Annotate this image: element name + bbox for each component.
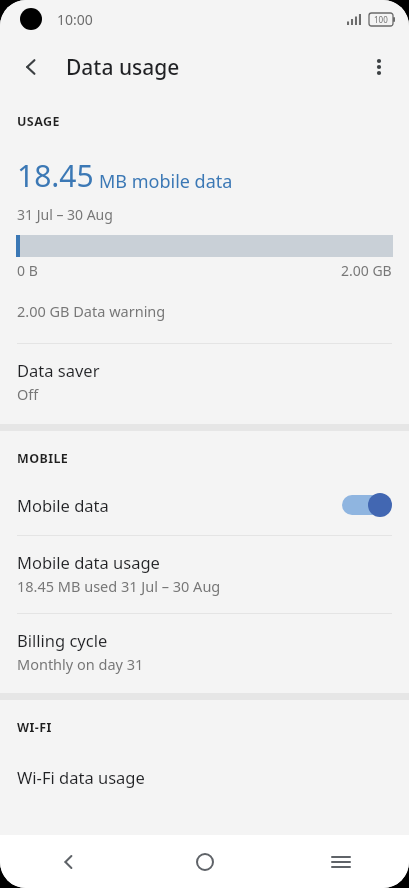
button[interactable]: Back [0,835,137,888]
staticText: MB mobile data [99,169,233,194]
staticText: 18.45 MB used 31 Jul – 30 Aug [17,576,221,596]
staticText: Mobile data [17,494,342,516]
staticText: Data usage [66,53,180,82]
button[interactable]: Recent apps [273,835,409,888]
button[interactable]: Mobile data usage [0,536,409,613]
staticText: 100 [374,14,388,25]
staticText: 18.45 [17,155,94,196]
staticText: USAGE [17,113,60,130]
staticText: 31 Jul – 30 Aug [17,205,113,224]
button[interactable]: Billing cycle [0,614,409,693]
staticText: Mobile data usage [17,551,160,573]
staticText: 10:00 [57,10,93,29]
staticText: 2.00 GB [341,261,392,280]
button[interactable]: Home [137,835,273,888]
staticText: Billing cycle [17,629,108,651]
staticText: 2.00 GB Data warning [17,301,166,321]
button[interactable]: Mobile data [0,489,409,535]
staticText: Wi-Fi data usage [17,766,145,788]
button[interactable]: Back [10,45,54,89]
staticText: 0 B [17,261,38,280]
staticText: Monthly on day 31 [17,654,144,674]
button[interactable]: Data saver [0,344,409,424]
staticText: WI-FI [17,719,52,736]
staticText: MOBILE [17,450,69,467]
button[interactable]: More options [357,45,401,89]
button[interactable]: Mobile data toggle [342,493,392,517]
staticText: Data saver [17,359,100,381]
button[interactable]: Wi-Fi data usage [0,764,409,802]
staticText: Off [17,384,39,404]
